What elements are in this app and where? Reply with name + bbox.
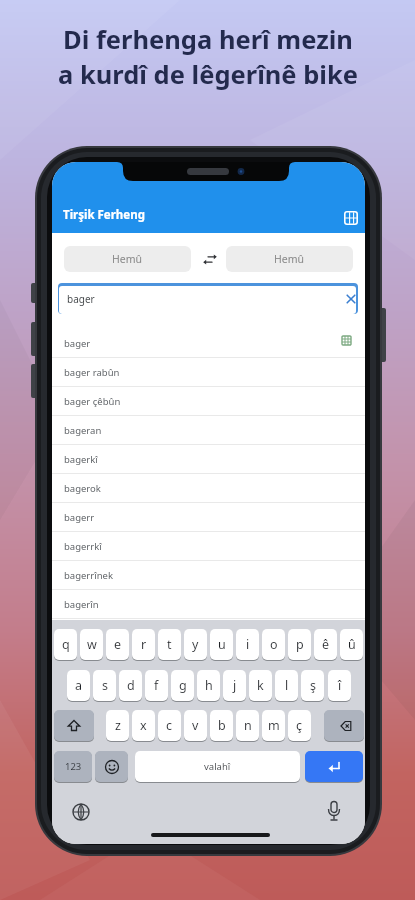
- staticText: r: [141, 636, 147, 653]
- staticText: d: [127, 677, 135, 694]
- button[interactable]: [343, 210, 359, 226]
- staticText: bager çêbûn: [64, 395, 121, 408]
- staticText: i: [246, 636, 250, 653]
- button[interactable]: [324, 710, 364, 741]
- staticText: s: [102, 677, 108, 694]
- staticText: bager: [67, 292, 95, 306]
- staticText: a: [75, 677, 83, 694]
- staticText: valahî: [204, 760, 231, 773]
- button[interactable]: e: [106, 629, 129, 660]
- staticText: ç: [296, 717, 303, 734]
- staticText: h: [205, 677, 213, 694]
- button[interactable]: bageran: [52, 416, 365, 445]
- button[interactable]: j: [223, 670, 246, 701]
- staticText: bagerîn: [64, 598, 99, 611]
- staticText: ş: [310, 677, 316, 694]
- staticText: q: [62, 636, 70, 653]
- button[interactable]: s: [93, 670, 116, 701]
- staticText: î: [338, 677, 342, 694]
- staticText: Hemû: [274, 252, 305, 266]
- button[interactable]: [54, 710, 94, 741]
- staticText: ê: [322, 636, 330, 653]
- staticText: n: [244, 717, 252, 734]
- button[interactable]: b: [210, 710, 233, 741]
- staticText: l: [285, 677, 289, 694]
- button[interactable]: k: [249, 670, 272, 701]
- button[interactable]: valahî: [135, 751, 300, 782]
- staticText: bagerkî: [64, 453, 98, 466]
- button[interactable]: d: [119, 670, 142, 701]
- staticText: e: [114, 636, 122, 653]
- staticText: k: [257, 677, 264, 694]
- button[interactable]: t: [158, 629, 181, 660]
- button[interactable]: y: [184, 629, 207, 660]
- staticText: bagerok: [64, 482, 101, 495]
- staticText: t: [167, 636, 172, 653]
- button[interactable]: Hemû: [64, 246, 191, 272]
- staticText: Di ferhenga herî mezin: [63, 22, 353, 57]
- button[interactable]: [305, 751, 363, 782]
- staticText: f: [154, 677, 159, 694]
- staticText: bagerrkî: [64, 540, 102, 553]
- staticText: g: [179, 677, 187, 694]
- staticText: m: [268, 717, 280, 734]
- staticText: c: [166, 717, 173, 734]
- button[interactable]: f: [145, 670, 168, 701]
- button[interactable]: ç: [288, 710, 311, 741]
- button[interactable]: u: [210, 629, 233, 660]
- button[interactable]: n: [236, 710, 259, 741]
- button[interactable]: x: [132, 710, 155, 741]
- staticText: j: [233, 677, 237, 694]
- button[interactable]: g: [171, 670, 194, 701]
- staticText: bagerrînek: [64, 569, 113, 582]
- button[interactable]: bager çêbûn: [52, 387, 365, 416]
- button[interactable]: bagerr: [52, 503, 365, 532]
- button[interactable]: c: [158, 710, 181, 741]
- staticText: bager rabûn: [64, 366, 120, 379]
- staticText: bager: [64, 337, 91, 350]
- staticText: 123: [65, 760, 82, 773]
- button[interactable]: ê: [314, 629, 337, 660]
- button[interactable]: [325, 800, 343, 824]
- button[interactable]: v: [184, 710, 207, 741]
- button[interactable]: p: [288, 629, 311, 660]
- staticText: u: [218, 636, 226, 653]
- button[interactable]: [71, 802, 91, 822]
- button[interactable]: 123: [54, 751, 92, 782]
- button[interactable]: bager: [52, 329, 365, 358]
- button[interactable]: û: [340, 629, 363, 660]
- button[interactable]: z: [106, 710, 129, 741]
- staticText: Hemû: [112, 252, 143, 266]
- button[interactable]: bagerok: [52, 474, 365, 503]
- staticText: û: [348, 636, 356, 653]
- button[interactable]: h: [197, 670, 220, 701]
- button[interactable]: bagerrkî: [52, 532, 365, 561]
- button[interactable]: m: [262, 710, 285, 741]
- staticText: bageran: [64, 424, 102, 437]
- button[interactable]: Hemû: [226, 246, 353, 272]
- staticText: b: [218, 717, 226, 734]
- staticText: bagerr: [64, 511, 95, 524]
- button[interactable]: bagerrînek: [52, 561, 365, 590]
- staticText: a kurdî de lêgerînê bike: [58, 57, 358, 92]
- staticText: x: [140, 717, 147, 734]
- button[interactable]: a: [67, 670, 90, 701]
- button[interactable]: i: [236, 629, 259, 660]
- button[interactable]: [95, 751, 128, 782]
- button[interactable]: l: [275, 670, 298, 701]
- button[interactable]: bagerîn: [52, 590, 365, 619]
- staticText: w: [87, 636, 97, 653]
- button[interactable]: bagerkî: [52, 445, 365, 474]
- button[interactable]: ş: [301, 670, 324, 701]
- button[interactable]: r: [132, 629, 155, 660]
- button[interactable]: o: [262, 629, 285, 660]
- staticText: v: [192, 717, 199, 734]
- staticText: p: [296, 636, 304, 653]
- button[interactable]: bager: [58, 283, 358, 314]
- button[interactable]: q: [54, 629, 77, 660]
- staticText: Tirşik Ferheng: [63, 207, 145, 223]
- button[interactable]: î: [328, 670, 351, 701]
- button[interactable]: bager rabûn: [52, 358, 365, 387]
- button[interactable]: w: [80, 629, 103, 660]
- staticText: z: [115, 717, 121, 734]
